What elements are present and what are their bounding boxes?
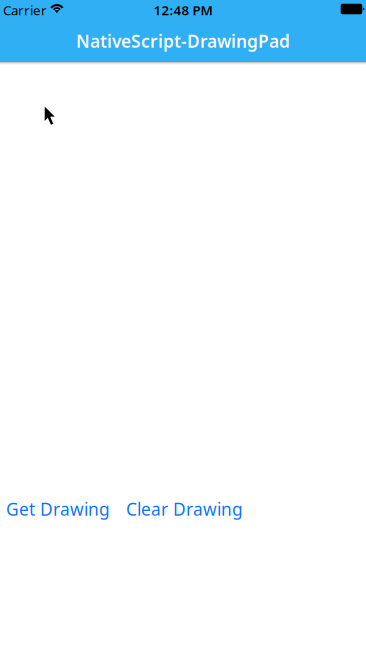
staticText: 12:48 PM [153, 1, 212, 19]
staticText: Carrier [3, 1, 47, 19]
staticText: Clear Drawing [126, 497, 243, 520]
button[interactable]: Get Drawing [0, 492, 116, 525]
staticText: NativeScript-DrawingPad [76, 29, 290, 52]
button[interactable]: Clear Drawing [116, 492, 249, 525]
staticText: Get Drawing [6, 497, 110, 520]
